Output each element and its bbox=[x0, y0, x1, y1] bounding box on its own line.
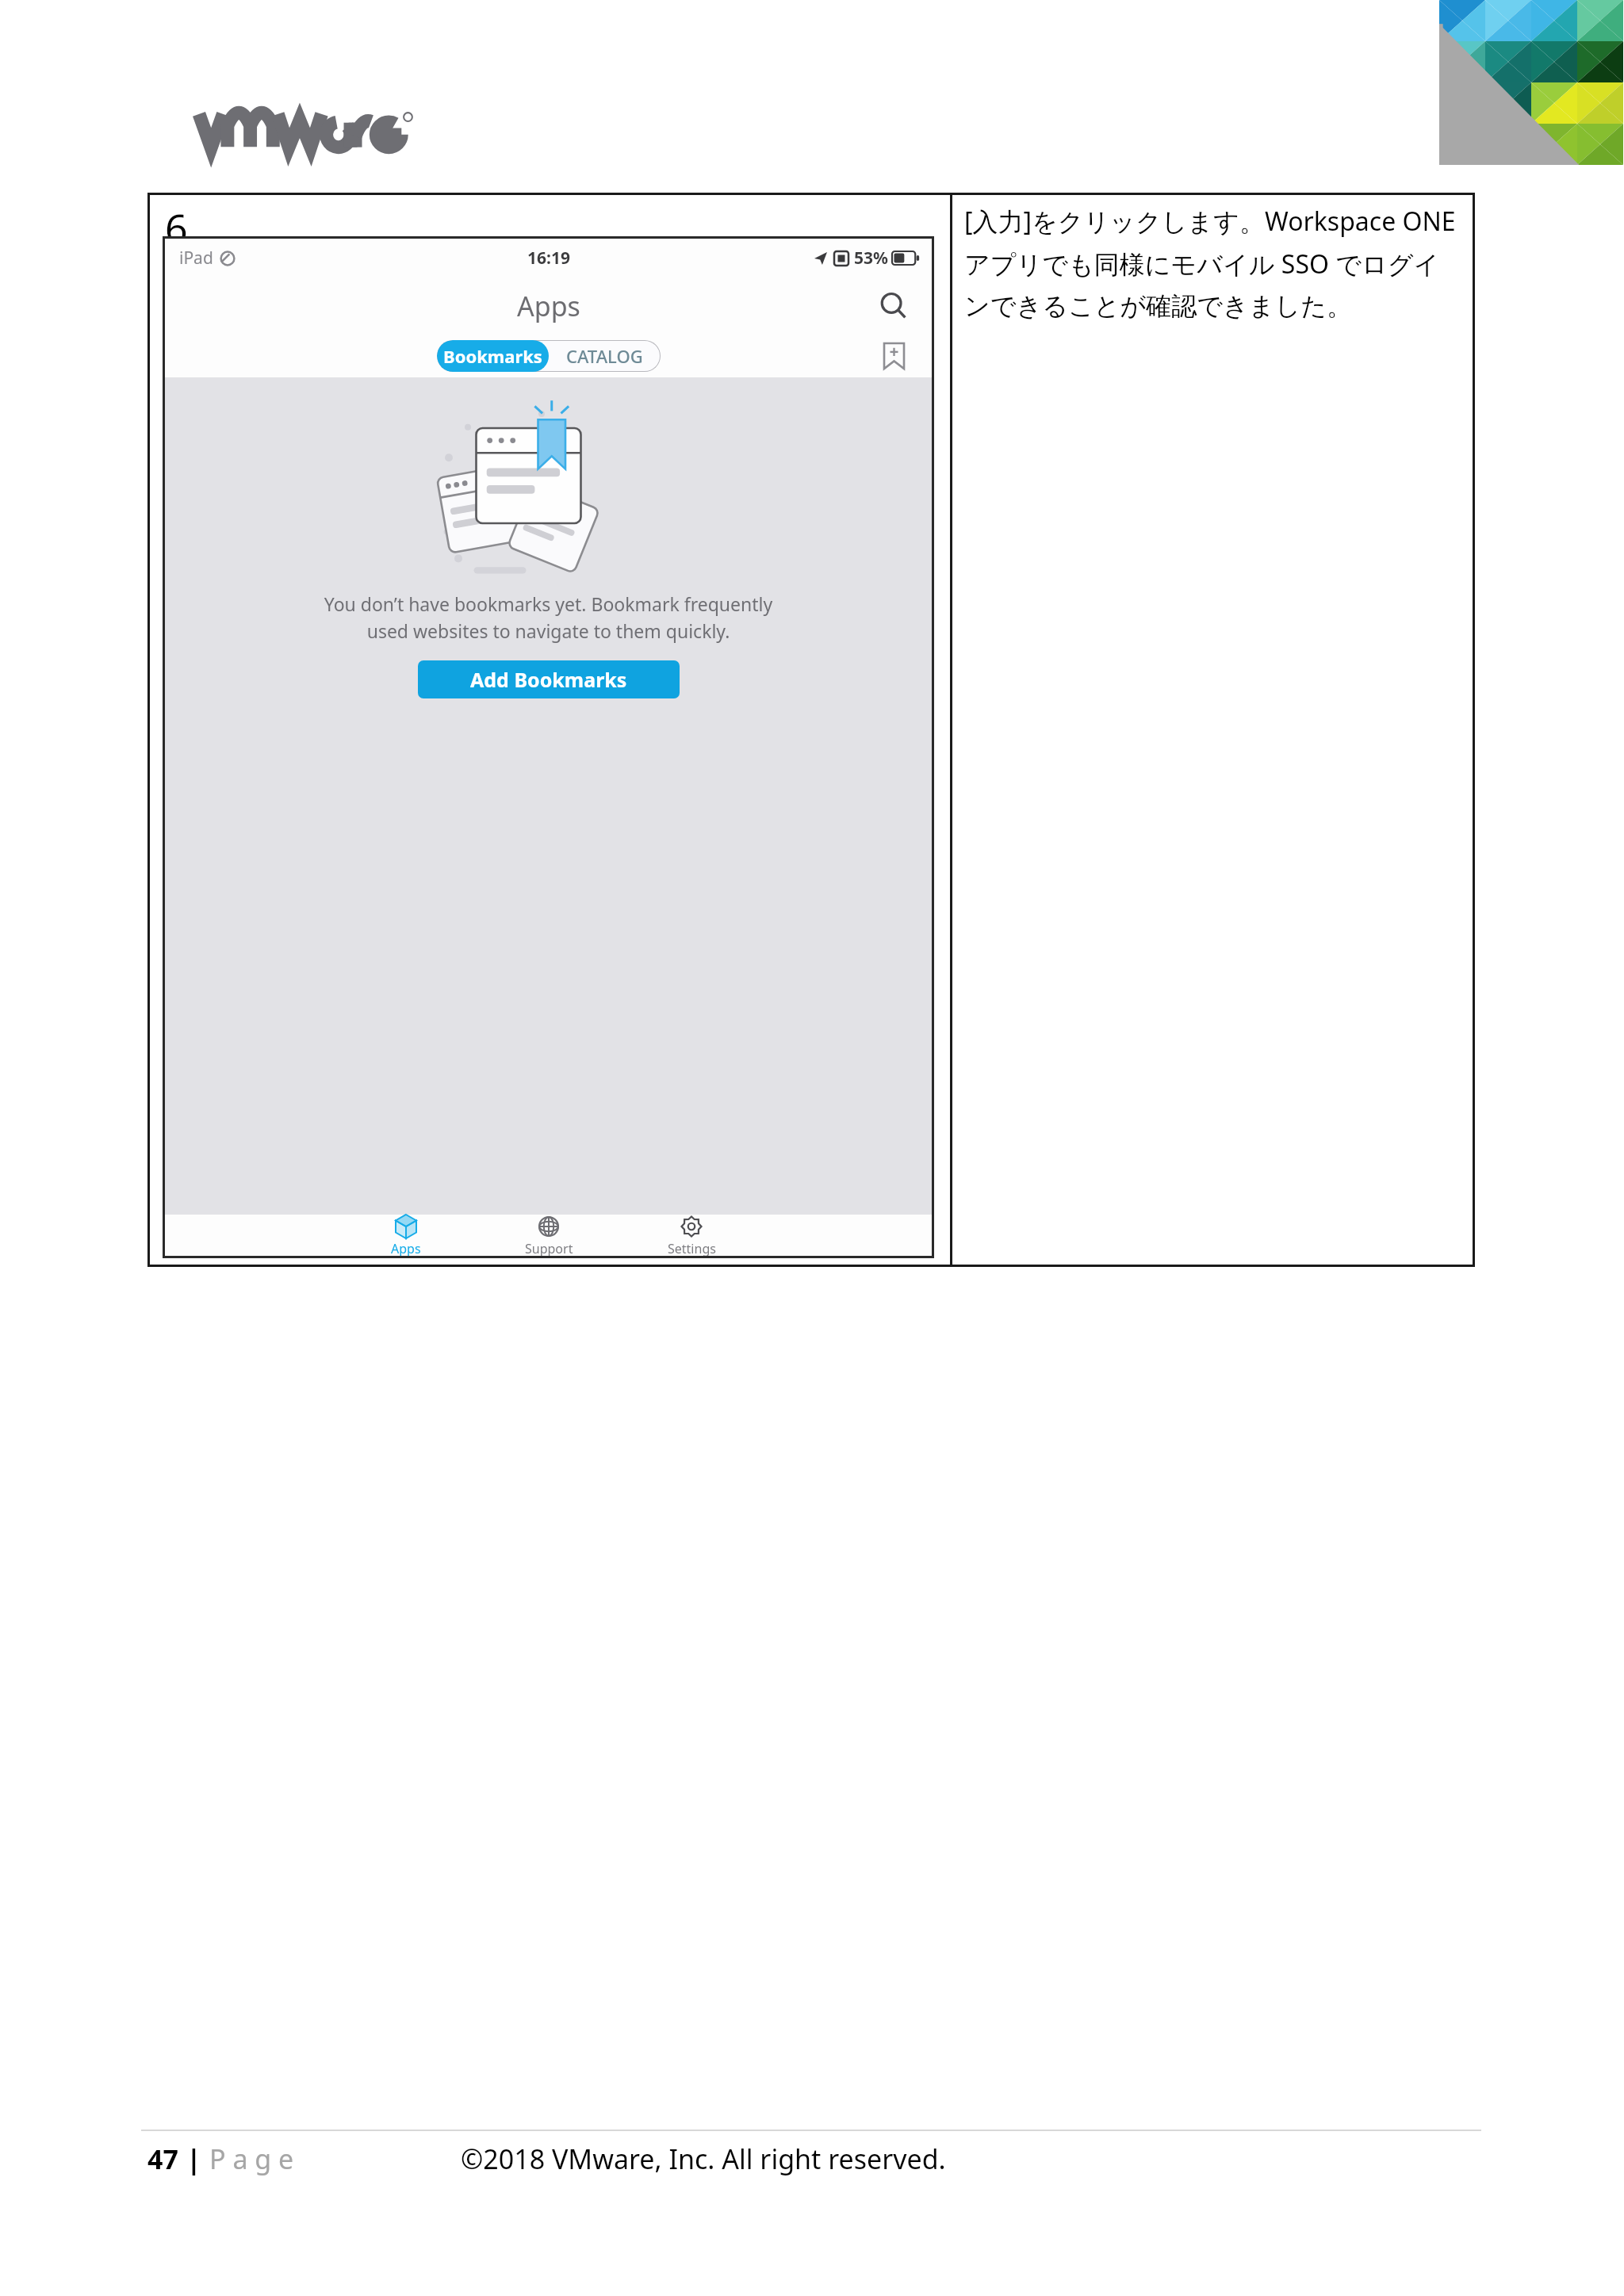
staticText: 6. bbox=[165, 201, 198, 254]
staticText: 16:19 bbox=[527, 247, 570, 270]
staticText: Bookmarks bbox=[443, 344, 542, 368]
button[interactable]: Bookmarks bbox=[437, 340, 549, 372]
staticText: 47 bbox=[147, 2141, 178, 2177]
staticText: Apps bbox=[517, 288, 580, 324]
staticText: 53% bbox=[854, 247, 888, 270]
button[interactable]: Support bbox=[477, 1215, 620, 1256]
staticText: Apps bbox=[391, 1240, 421, 1256]
button[interactable]: Settings bbox=[620, 1215, 763, 1256]
staticText: iPad bbox=[179, 247, 213, 270]
staticText: [入力]をクリックします。Workspace ONE アプリでも同様にモバイル … bbox=[964, 204, 1456, 322]
staticText: You don’t have bookmarks yet. Bookmark f… bbox=[165, 591, 932, 643]
button[interactable]: Search bbox=[873, 285, 914, 327]
staticText: Settings bbox=[668, 1240, 716, 1256]
button[interactable]: Add Bookmarks bbox=[418, 660, 680, 698]
staticText: Add Bookmarks bbox=[470, 666, 627, 693]
staticText: | bbox=[186, 2141, 201, 2177]
button[interactable]: Apps bbox=[335, 1215, 477, 1256]
button[interactable]: Add bookmark bbox=[876, 339, 911, 373]
staticText: CATALOG bbox=[566, 344, 643, 368]
staticText: P a g e bbox=[209, 2141, 294, 2177]
staticText: ©2018 VMware, Inc. All right reserved. bbox=[461, 2141, 946, 2177]
button[interactable]: CATALOG bbox=[549, 340, 661, 372]
staticText: Support bbox=[525, 1240, 573, 1256]
